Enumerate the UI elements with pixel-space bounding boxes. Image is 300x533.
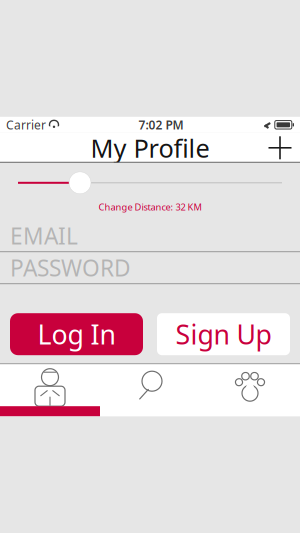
button[interactable]: Pets — [200, 364, 300, 406]
button[interactable]: Profile — [0, 364, 100, 406]
staticText: Change Distance: 32 KM — [98, 201, 201, 213]
button[interactable]: Log In — [10, 313, 143, 355]
button[interactable]: Add — [260, 133, 300, 163]
staticText: My Profile — [90, 131, 209, 165]
staticText: Sign Up — [175, 316, 271, 352]
staticText: Log In — [37, 316, 115, 352]
staticText: Carrier — [6, 117, 46, 133]
button[interactable]: Sign Up — [157, 313, 290, 355]
button[interactable]: Search — [100, 364, 200, 406]
staticText: EMAIL — [10, 221, 78, 251]
staticText: 7:02 PM — [138, 117, 183, 133]
staticText: PASSWORD — [10, 253, 131, 283]
